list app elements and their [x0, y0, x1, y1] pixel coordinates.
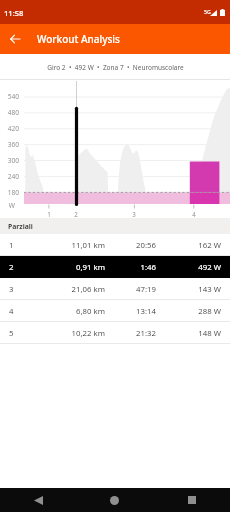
staticText: 1 [9, 240, 29, 251]
button[interactable]: 5 [0, 322, 230, 344]
staticText: 47:19 [105, 284, 156, 295]
staticText: 21:32 [105, 328, 156, 339]
staticText: 1 [44, 210, 54, 218]
staticText: 11,01 km [20, 240, 105, 251]
staticText: W [0, 201, 15, 210]
staticText: 6,80 km [20, 306, 105, 317]
staticText: 20:56 [105, 240, 156, 251]
staticText: 300 [0, 156, 19, 165]
staticText: 480 [0, 108, 19, 117]
button[interactable]: 1 [0, 234, 230, 256]
staticText: 143 W [147, 284, 221, 295]
staticText: 1:46 [105, 262, 156, 273]
staticText: 240 [0, 172, 19, 181]
staticText: 0,91 km [20, 262, 105, 273]
staticText: 4 [9, 306, 29, 317]
staticText: 288 W [147, 306, 221, 317]
staticText: 4 [189, 210, 199, 218]
staticText: 162 W [147, 240, 221, 251]
button[interactable]: 4 [0, 300, 230, 322]
button[interactable]: 2 [0, 256, 230, 278]
staticText: 3 [129, 210, 139, 218]
staticText: 5G [204, 8, 211, 15]
button[interactable]: Back [0, 488, 76, 512]
staticText: 2 [71, 210, 81, 218]
staticText: 492 W [147, 262, 221, 273]
staticText: 360 [0, 140, 19, 149]
staticText: 13:14 [105, 306, 156, 317]
staticText: 5 [9, 328, 29, 339]
staticText: 10,22 km [20, 328, 105, 339]
staticText: Giro 2 • 492 W • Zona 7 • Neuromuscolare [47, 63, 184, 72]
button[interactable]: Recents [153, 488, 230, 512]
button[interactable]: Home [76, 488, 153, 512]
staticText: 420 [0, 124, 19, 133]
staticText: 2 [9, 262, 29, 273]
button[interactable]: Back [0, 24, 30, 54]
staticText: 180 [0, 188, 19, 197]
staticText: 3 [9, 284, 29, 295]
staticText: 540 [0, 92, 19, 101]
staticText: 21,06 km [20, 284, 105, 295]
button[interactable]: 3 [0, 278, 230, 300]
staticText: Parziali [8, 222, 33, 231]
staticText: Workout Analysis [37, 32, 120, 46]
staticText: 148 W [147, 328, 221, 339]
staticText: 11:58 [4, 8, 24, 18]
